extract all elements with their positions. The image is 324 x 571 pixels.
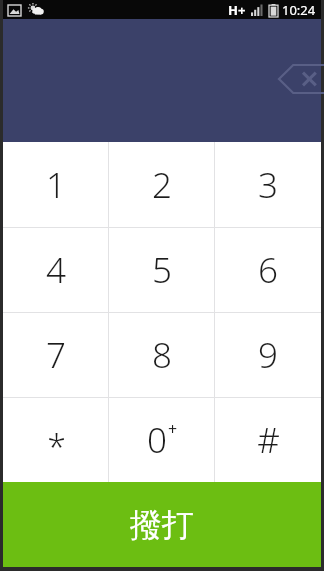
staticText: 7 <box>46 331 66 379</box>
button[interactable]: 0 <box>109 398 215 482</box>
button[interactable]: Backspace <box>277 63 324 95</box>
button[interactable]: 5 <box>109 228 215 312</box>
staticText: * <box>47 424 66 470</box>
staticText: 3 <box>258 161 278 209</box>
staticText: 9 <box>258 331 278 379</box>
staticText: # <box>257 416 280 464</box>
button[interactable]: # <box>215 398 321 482</box>
staticText: + <box>168 418 178 440</box>
button[interactable]: 6 <box>215 228 321 312</box>
staticText: 8 <box>152 331 172 379</box>
staticText: 10:24 <box>282 1 316 19</box>
button[interactable]: * <box>3 398 109 482</box>
button[interactable]: 7 <box>3 313 109 397</box>
staticText: 0 <box>147 416 167 464</box>
button[interactable]: 9 <box>215 313 321 397</box>
button[interactable]: 8 <box>109 313 215 397</box>
staticText: 6 <box>258 246 278 294</box>
button[interactable]: 2 <box>109 142 215 227</box>
button[interactable]: 4 <box>3 228 109 312</box>
staticText: 撥打 <box>130 505 194 545</box>
staticText: 5 <box>152 246 172 294</box>
staticText: 1 <box>46 161 66 209</box>
button[interactable]: 1 <box>3 142 109 227</box>
staticText: 2 <box>152 161 172 209</box>
button[interactable]: 3 <box>215 142 321 227</box>
staticText: 4 <box>46 246 66 294</box>
button[interactable]: 撥打 <box>3 482 321 567</box>
staticText: H+ <box>228 1 246 19</box>
